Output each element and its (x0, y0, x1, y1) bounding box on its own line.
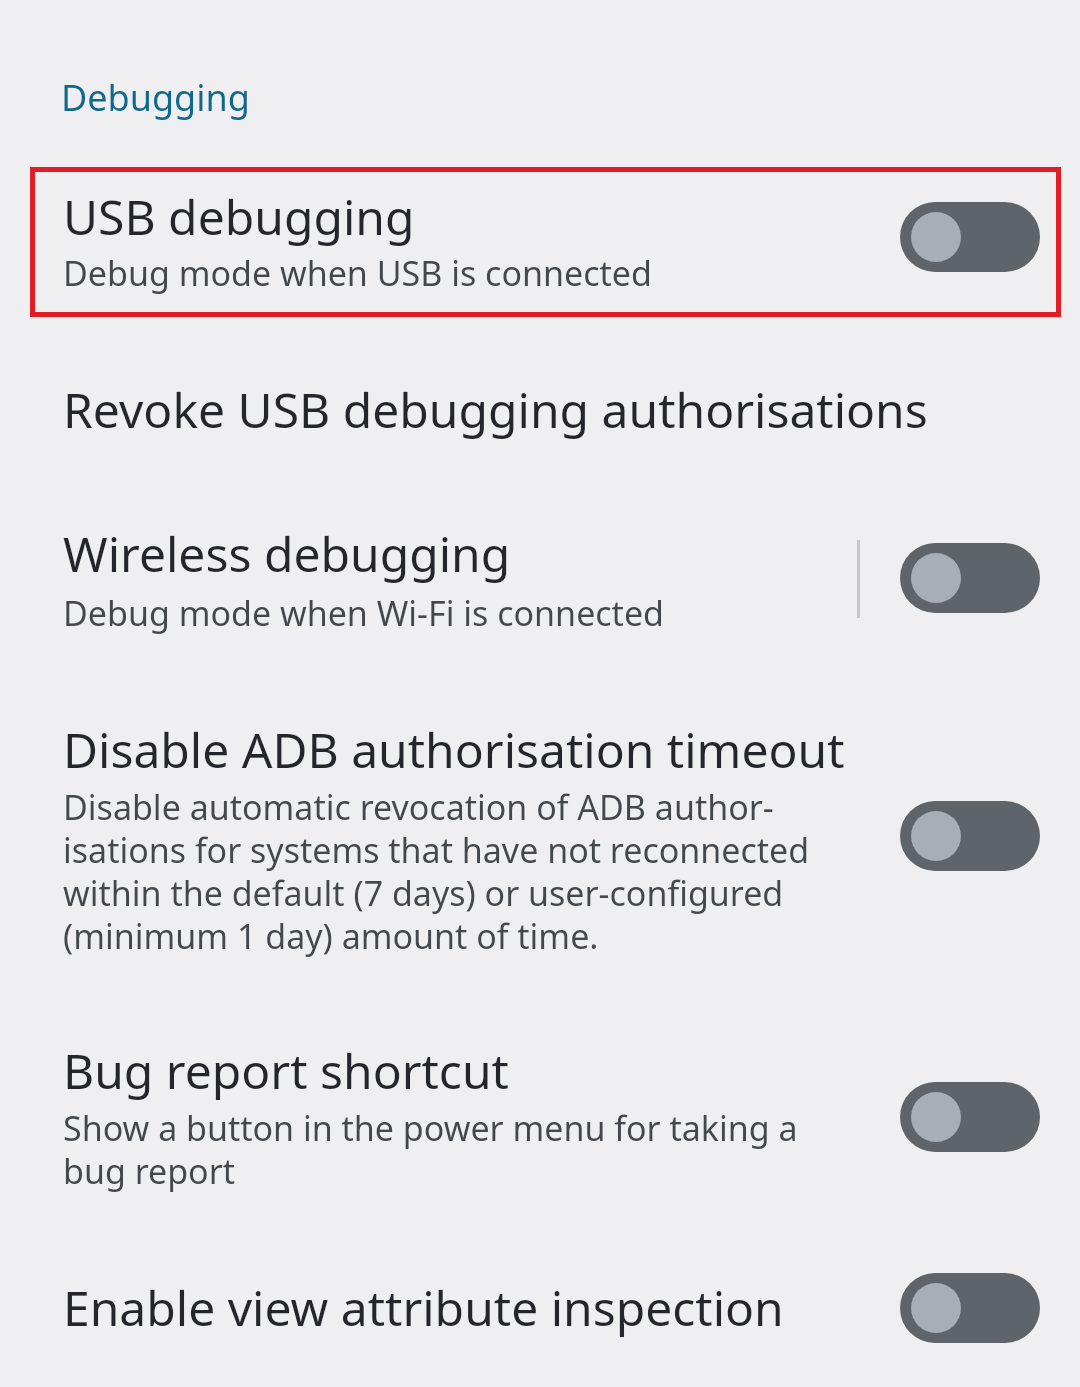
button[interactable] (30, 167, 1061, 317)
staticText: Wireless debugging (63, 521, 511, 586)
staticText: Bug report shortcut (63, 1038, 509, 1103)
staticText: Disable automatic revocation of ADB auth… (63, 784, 774, 830)
button[interactable] (900, 801, 1040, 871)
staticText: Show a button in the power menu for taki… (63, 1105, 798, 1151)
staticText: Enable view attribute inspection (63, 1275, 784, 1340)
button[interactable] (900, 202, 1040, 272)
button[interactable] (900, 1082, 1040, 1152)
button[interactable] (0, 510, 1080, 650)
staticText: Revoke USB debugging authorisations (63, 377, 928, 442)
button[interactable] (0, 360, 1080, 460)
staticText: Debugging (61, 73, 250, 122)
button[interactable] (900, 543, 1040, 613)
staticText: bug report (63, 1148, 236, 1194)
staticText: within the default (7 days) or user-conf… (63, 870, 784, 916)
button[interactable] (0, 1260, 1080, 1387)
staticText: Disable ADB authorisation timeout (63, 717, 845, 782)
staticText: (minimum 1 day) amount of time. (63, 913, 599, 959)
staticText: Debug mode when USB is connected (63, 250, 652, 296)
button[interactable] (900, 1273, 1040, 1343)
staticText: Debug mode when Wi-Fi is connected (63, 590, 664, 636)
button[interactable] (0, 715, 1080, 965)
button[interactable] (0, 1040, 1080, 1220)
staticText: isations for systems that have not recon… (63, 827, 810, 873)
staticText: USB debugging (63, 184, 415, 249)
